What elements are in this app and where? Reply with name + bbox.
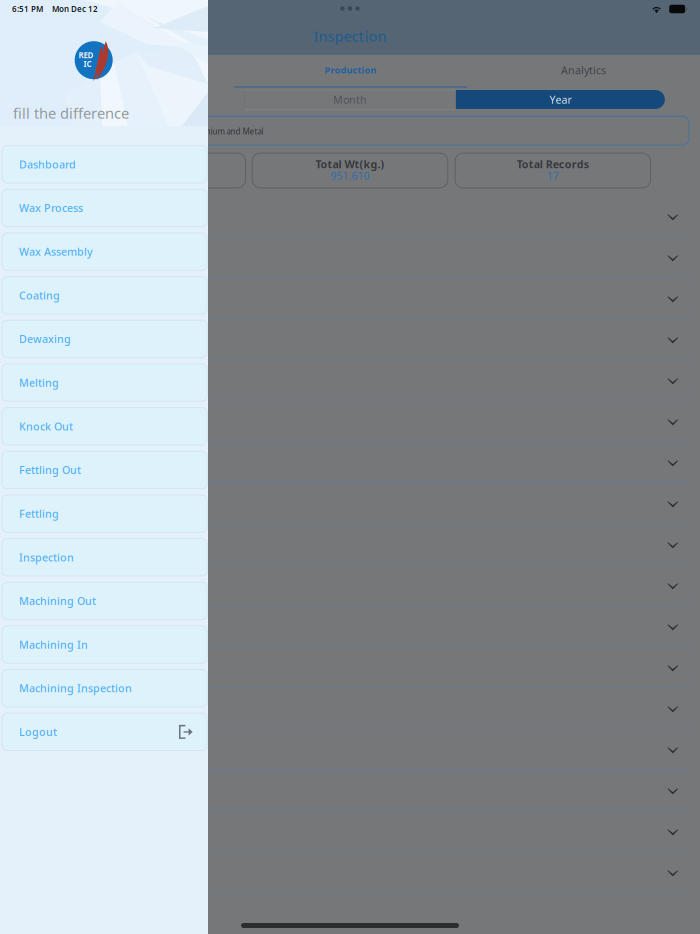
staticText: Machining Out: [19, 594, 96, 608]
button[interactable]: Analytics: [467, 57, 700, 83]
staticText: Dashboard: [19, 157, 76, 171]
button[interactable]: Expand record: [10, 282, 691, 318]
button[interactable]: Expand record: [10, 733, 691, 769]
staticText: Total Records: [517, 157, 589, 171]
staticText: fill the difference: [13, 103, 129, 123]
button[interactable]: Expand record: [10, 856, 691, 892]
staticText: 951.610: [330, 168, 369, 183]
staticText: Dewaxing: [19, 332, 71, 346]
button[interactable]: Total: [50, 153, 246, 188]
staticText: Wax Process: [19, 201, 83, 215]
button[interactable]: Knock Out: [2, 408, 207, 445]
button[interactable]: Expand record: [10, 241, 691, 277]
button[interactable]: Wax Assembly: [2, 233, 207, 270]
button[interactable]: Machining Out: [2, 582, 207, 620]
button[interactable]: Month: [245, 89, 455, 109]
staticText: Total Wt(kg.): [315, 157, 384, 171]
button[interactable]: Dashboard: [2, 146, 207, 183]
staticText: Machining In: [19, 637, 88, 652]
button[interactable]: Fettling Out: [2, 451, 207, 489]
button[interactable]: Expand record: [10, 651, 691, 687]
button[interactable]: Production: [234, 57, 467, 83]
button[interactable]: Expand record: [10, 610, 691, 646]
button[interactable]: Expand record: [10, 815, 691, 851]
staticText: Machining Inspection: [19, 681, 132, 695]
button[interactable]: Expand record: [10, 200, 691, 236]
staticText: Coating: [19, 288, 60, 302]
button[interactable]: Expand record: [10, 569, 691, 605]
staticText: Aluminium and Metal: [184, 126, 263, 137]
staticText: Melting: [19, 375, 59, 390]
button[interactable]: Expand record: [10, 692, 691, 728]
button[interactable]: Fettling: [2, 495, 207, 532]
staticText: Inspection: [19, 550, 74, 564]
button[interactable]: Total Records: [455, 153, 650, 188]
button[interactable]: Year: [456, 90, 665, 109]
staticText: Inspection: [313, 26, 386, 46]
staticText: IC: [83, 59, 91, 69]
button[interactable]: Expand record: [10, 446, 691, 482]
button[interactable]: Inspection: [2, 538, 207, 576]
button[interactable]: Expand record: [10, 405, 691, 441]
staticText: RED: [78, 50, 93, 60]
button[interactable]: Wax Process: [2, 189, 207, 227]
button[interactable]: Expand record: [10, 528, 691, 564]
staticText: Fettling Out: [19, 463, 81, 477]
button[interactable]: Expand record: [10, 364, 691, 400]
staticText: 17: [547, 168, 559, 183]
button[interactable]: Dewaxing: [2, 320, 207, 358]
button[interactable]: Logout: [2, 713, 207, 751]
button[interactable]: Expand record: [10, 323, 691, 359]
button[interactable]: Expand record: [10, 774, 691, 810]
staticText: Mon Dec 12: [52, 4, 98, 14]
button[interactable]: Total Wt(kg.): [252, 153, 448, 188]
button[interactable]: Machining In: [2, 626, 207, 663]
button[interactable]: Expand record: [10, 487, 691, 523]
staticText: 6:51 PM: [12, 4, 43, 14]
staticText: Production: [324, 64, 376, 76]
staticText: Fettling: [19, 506, 59, 521]
staticText: Wax Assembly: [19, 244, 93, 259]
staticText: Knock Out: [19, 419, 73, 433]
button[interactable]: Coating: [2, 277, 207, 314]
button[interactable]: Melting: [2, 364, 207, 401]
staticText: Analytics: [561, 63, 606, 77]
button[interactable]: Machining Inspection: [2, 669, 207, 707]
staticText: Year: [549, 92, 571, 107]
staticText: Logout: [19, 725, 57, 739]
staticText: Month: [333, 92, 367, 107]
